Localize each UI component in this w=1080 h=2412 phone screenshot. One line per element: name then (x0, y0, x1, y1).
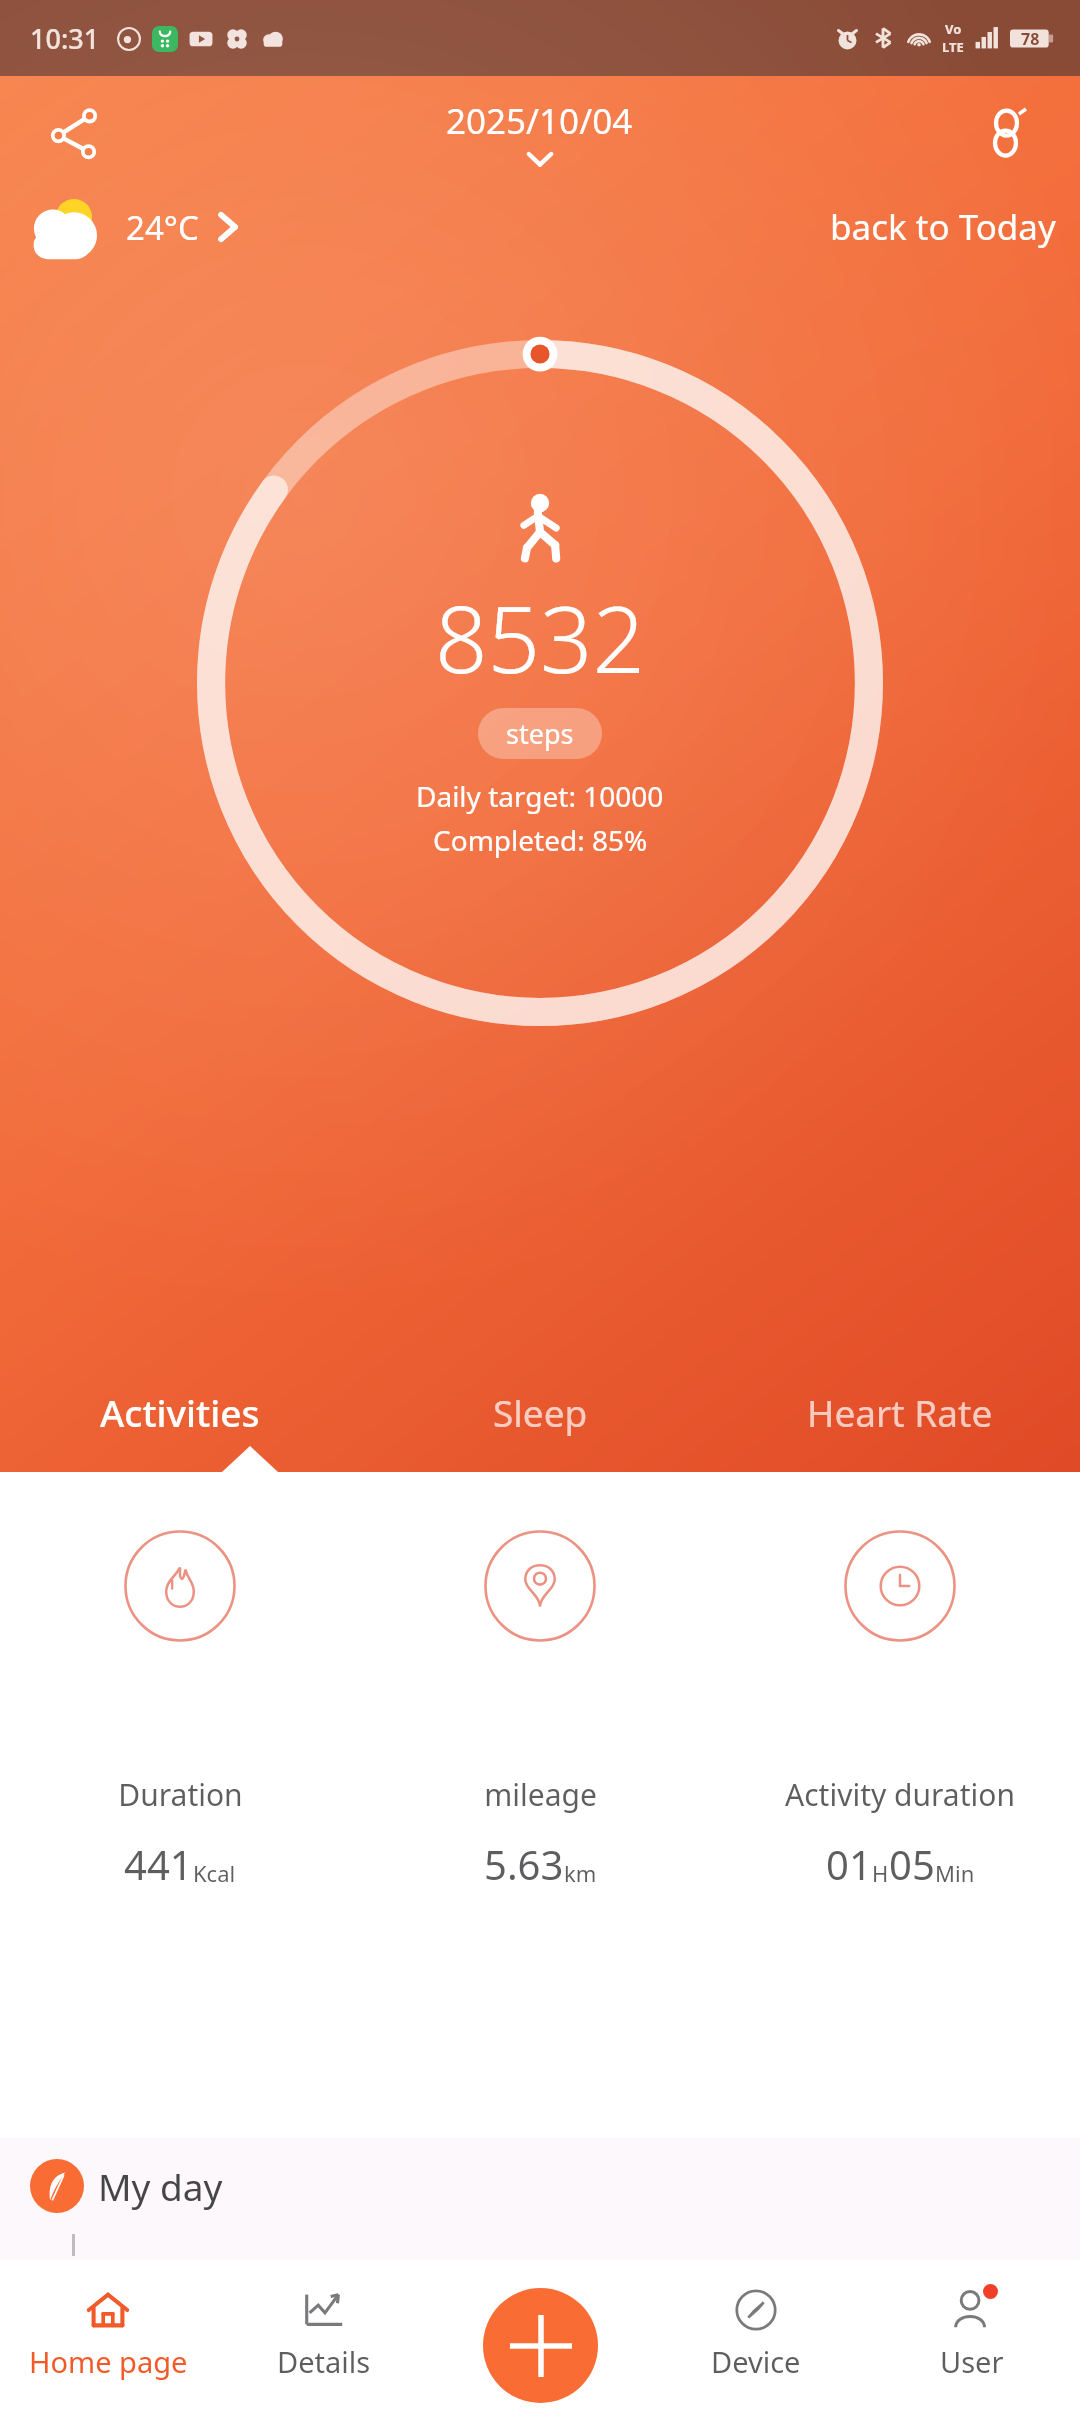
button[interactable]: Share (40, 99, 108, 167)
staticText: Kcal (193, 1858, 236, 1888)
button[interactable]: 24°C (24, 192, 239, 262)
staticText: Home page (29, 2342, 188, 2381)
staticText: 10:31 (30, 20, 100, 57)
staticText: 2025/10/04 (446, 97, 633, 145)
staticText: 24°C (126, 205, 199, 250)
staticText: 8532 (435, 575, 646, 700)
staticText: Details (277, 2342, 371, 2381)
button[interactable]: Details (216, 2260, 432, 2412)
staticText: Device (711, 2342, 801, 2381)
staticText: 78 (1021, 28, 1040, 50)
button[interactable]: Home page (0, 2260, 216, 2412)
button[interactable]: Activities (0, 1352, 360, 1472)
staticText: 05 (889, 1837, 935, 1891)
staticText: Sleep (493, 1387, 588, 1437)
button[interactable]: My day (0, 2138, 1080, 2234)
staticText: Daily target: 10000 (416, 777, 664, 815)
button[interactable]: Duration (0, 1530, 360, 1891)
staticText: 5.63 (484, 1837, 564, 1891)
button[interactable]: Device (648, 2260, 864, 2412)
button[interactable]: Sleep (360, 1352, 720, 1472)
staticText: 01 (826, 1837, 872, 1891)
staticText: Completed: 85% (433, 821, 648, 859)
button[interactable]: back to Today (830, 203, 1056, 251)
button[interactable]: Heart Rate (720, 1352, 1080, 1472)
staticText: km (564, 1858, 597, 1888)
button[interactable]: Link device (972, 99, 1040, 167)
staticText: Heart Rate (807, 1387, 993, 1437)
staticText: Activities (100, 1387, 260, 1437)
staticText: User (940, 2342, 1004, 2381)
button[interactable]: 2025/10/04 (446, 97, 633, 169)
staticText: Vo (945, 20, 962, 38)
staticText: back to Today (830, 203, 1056, 251)
staticText: Min (935, 1858, 975, 1888)
staticText: H (872, 1858, 889, 1888)
button[interactable]: Add (483, 2288, 598, 2403)
staticText: steps (506, 715, 574, 752)
staticText: LTE (942, 38, 964, 56)
staticText: My day (98, 2161, 223, 2211)
staticText: mileage (484, 1774, 597, 1815)
button[interactable]: mileage (360, 1530, 720, 1891)
staticText: Activity duration (785, 1774, 1015, 1815)
button[interactable]: User (864, 2260, 1080, 2412)
staticText: Duration (118, 1774, 243, 1815)
button[interactable]: Activity duration (720, 1530, 1080, 1891)
staticText: 441 (124, 1837, 193, 1891)
